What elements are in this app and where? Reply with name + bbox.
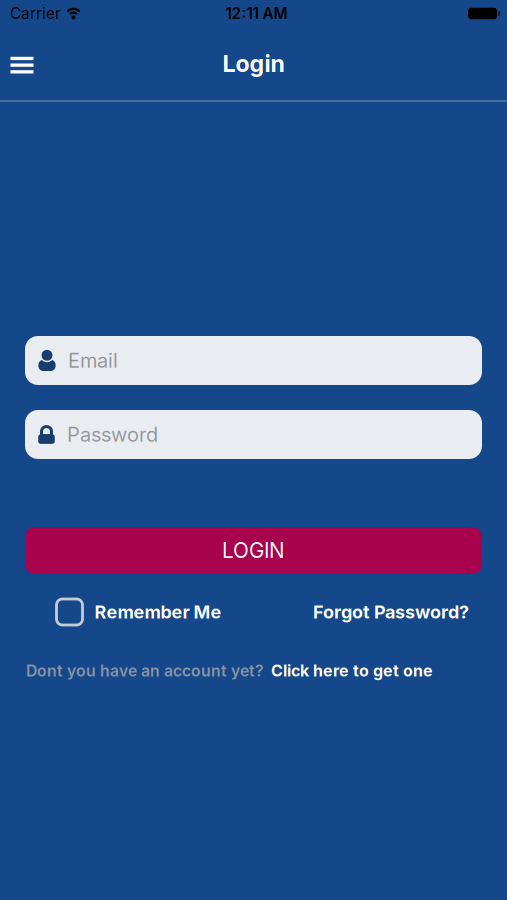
- button[interactable]: Click here to get one: [271, 661, 433, 680]
- staticText: Remember Me: [94, 601, 221, 623]
- staticText: Login: [222, 49, 284, 78]
- staticText: 12:11 AM: [225, 4, 287, 23]
- button[interactable]: Remember Me: [56, 599, 221, 625]
- staticText: Carrier: [10, 4, 61, 23]
- staticText: Dont you have an account yet?: [26, 661, 264, 680]
- button[interactable]: Email: [25, 336, 482, 385]
- staticText: Click here to get one: [271, 661, 433, 680]
- staticText: Forgot Password?: [313, 601, 469, 623]
- staticText: LOGIN: [222, 538, 285, 563]
- button[interactable]: [10, 57, 33, 74]
- button[interactable]: LOGIN: [25, 527, 482, 574]
- staticText: Password: [67, 422, 158, 447]
- button[interactable]: Password: [25, 410, 482, 459]
- button[interactable]: Forgot Password?: [313, 601, 469, 623]
- staticText: Email: [68, 348, 118, 373]
